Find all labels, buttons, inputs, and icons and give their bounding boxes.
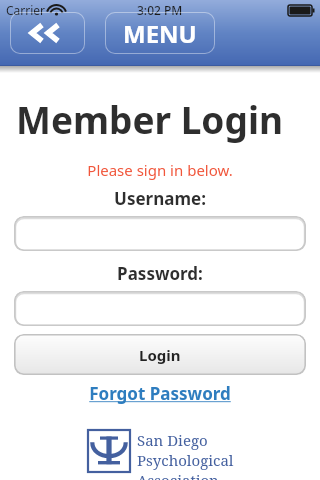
staticText: Carrier [6, 2, 46, 18]
staticText: 3:02 PM [137, 2, 183, 18]
staticText: Username: [0, 187, 320, 210]
staticText: MENU [123, 17, 197, 50]
button[interactable]: MENU [105, 12, 215, 54]
button[interactable] [14, 216, 306, 251]
staticText: San Diego [137, 430, 208, 450]
staticText: Password: [0, 262, 320, 285]
staticText: Member Login [16, 94, 283, 144]
staticText: Login [139, 345, 181, 365]
staticText: Psychological [137, 450, 234, 470]
staticText: Please sign in below. [0, 160, 320, 180]
staticText: Association [137, 470, 219, 480]
button[interactable]: Forgot Password [0, 382, 320, 405]
button[interactable] [14, 291, 306, 326]
button[interactable]: Back [10, 12, 85, 54]
button[interactable]: Login [14, 334, 306, 375]
